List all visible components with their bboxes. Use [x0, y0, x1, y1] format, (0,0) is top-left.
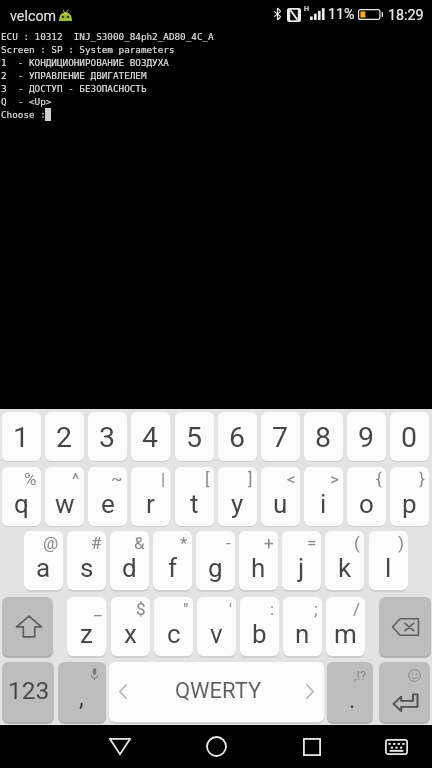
button[interactable]: Enter [379, 662, 430, 722]
button[interactable]: Hide keyboard [372, 725, 420, 768]
button[interactable]: : [240, 597, 279, 656]
button[interactable]: Shift [2, 597, 53, 656]
staticText: x [124, 619, 137, 649]
staticText: c [167, 619, 181, 649]
button[interactable]: } [390, 467, 429, 526]
button[interactable]: Comma, voice input [58, 662, 106, 722]
button[interactable]: / [326, 597, 365, 656]
staticText: s [80, 553, 94, 583]
button[interactable]: ) [369, 531, 408, 590]
button[interactable]: 2 [45, 412, 84, 461]
staticText: d [122, 553, 137, 583]
button[interactable]: 1 [2, 412, 41, 461]
staticText: ] [248, 469, 253, 489]
staticText: z [80, 619, 93, 649]
staticText: & [134, 533, 145, 553]
staticText: o [359, 489, 374, 519]
button[interactable]: ] [218, 467, 257, 526]
button[interactable]: ; [283, 597, 322, 656]
staticText: f [168, 553, 178, 583]
staticText: 1 - КОНДИЦИОНИРОВАНИЕ ВОЗДУХА [1, 57, 169, 68]
staticText: 2 [56, 421, 73, 454]
button[interactable]: { [347, 467, 386, 526]
button[interactable]: 3 [88, 412, 127, 461]
staticText: [ [205, 469, 210, 489]
button[interactable]: 7 [261, 412, 300, 461]
button[interactable]: * [153, 531, 192, 590]
button[interactable]: Home [192, 725, 240, 768]
button[interactable]: = [282, 531, 321, 590]
staticText: n [295, 619, 310, 649]
staticText: { [376, 469, 382, 489]
button[interactable]: $ [111, 597, 150, 656]
button[interactable]: ' [197, 597, 236, 656]
staticText: h [251, 553, 266, 583]
staticText: ) [398, 533, 404, 553]
staticText: e [101, 489, 115, 519]
staticText: : [270, 599, 275, 619]
staticText: # [91, 533, 102, 553]
button[interactable]: ,!? [327, 662, 373, 722]
staticText: > [330, 469, 339, 489]
button[interactable]: " [154, 597, 193, 656]
staticText: ' [229, 599, 232, 619]
button[interactable]: % [2, 467, 41, 526]
button[interactable]: Backspace [379, 597, 431, 656]
button[interactable]: & [110, 531, 149, 590]
button[interactable]: > [304, 467, 343, 526]
button[interactable]: Back [96, 725, 144, 768]
button[interactable]: QWERTY [109, 662, 324, 722]
staticText: H [304, 5, 309, 13]
button[interactable]: Recents [288, 725, 336, 768]
button[interactable]: ^ [45, 467, 84, 526]
button[interactable]: - [196, 531, 235, 590]
button[interactable]: 0 [390, 412, 429, 461]
staticText: k [338, 553, 352, 583]
staticText: - [226, 533, 231, 553]
staticText: ~ [111, 469, 123, 489]
staticText: } [419, 469, 425, 489]
button[interactable]: _ [67, 597, 106, 656]
button[interactable]: 8 [304, 412, 343, 461]
button[interactable]: ( [325, 531, 364, 590]
staticText: 0 [401, 421, 418, 454]
button[interactable]: ~ [88, 467, 127, 526]
staticText: | [161, 469, 166, 489]
button[interactable]: < [261, 467, 300, 526]
staticText: _ [94, 599, 102, 619]
staticText: a [36, 553, 51, 583]
staticText: 1 [13, 421, 30, 454]
staticText: Screen : SP : System parameters [1, 44, 175, 55]
staticText: q [14, 489, 29, 519]
staticText: Choose : [1, 109, 46, 120]
button[interactable]: # [67, 531, 106, 590]
staticText: + [264, 533, 274, 553]
staticText: Q - <Up> [1, 96, 52, 107]
staticText: ^ [72, 469, 80, 489]
staticText: 9 [358, 421, 375, 454]
staticText: w [55, 489, 75, 519]
staticText: l [385, 553, 392, 583]
staticText: j [298, 553, 305, 583]
button[interactable]: [ [175, 467, 214, 526]
staticText: p [402, 489, 417, 519]
button[interactable]: 4 [131, 412, 170, 461]
staticText: * [180, 533, 188, 553]
staticText: QWERTY [175, 678, 262, 704]
staticText: , [79, 684, 84, 712]
staticText: 7 [272, 421, 289, 454]
staticText: $ [136, 599, 146, 619]
staticText: 11% [328, 6, 355, 23]
staticText: u [273, 489, 288, 519]
staticText: i [320, 489, 327, 519]
staticText: . [349, 686, 356, 714]
button[interactable]: 9 [347, 412, 386, 461]
button[interactable]: 6 [218, 412, 257, 461]
button[interactable]: + [239, 531, 278, 590]
staticText: y [231, 489, 244, 519]
button[interactable]: 123 [2, 662, 54, 722]
button[interactable]: @ [24, 531, 63, 590]
button[interactable]: | [131, 467, 170, 526]
button[interactable]: 5 [175, 412, 214, 461]
staticText: t [190, 489, 199, 519]
